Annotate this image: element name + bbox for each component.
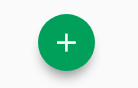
button[interactable]: Add (38, 14, 95, 71)
